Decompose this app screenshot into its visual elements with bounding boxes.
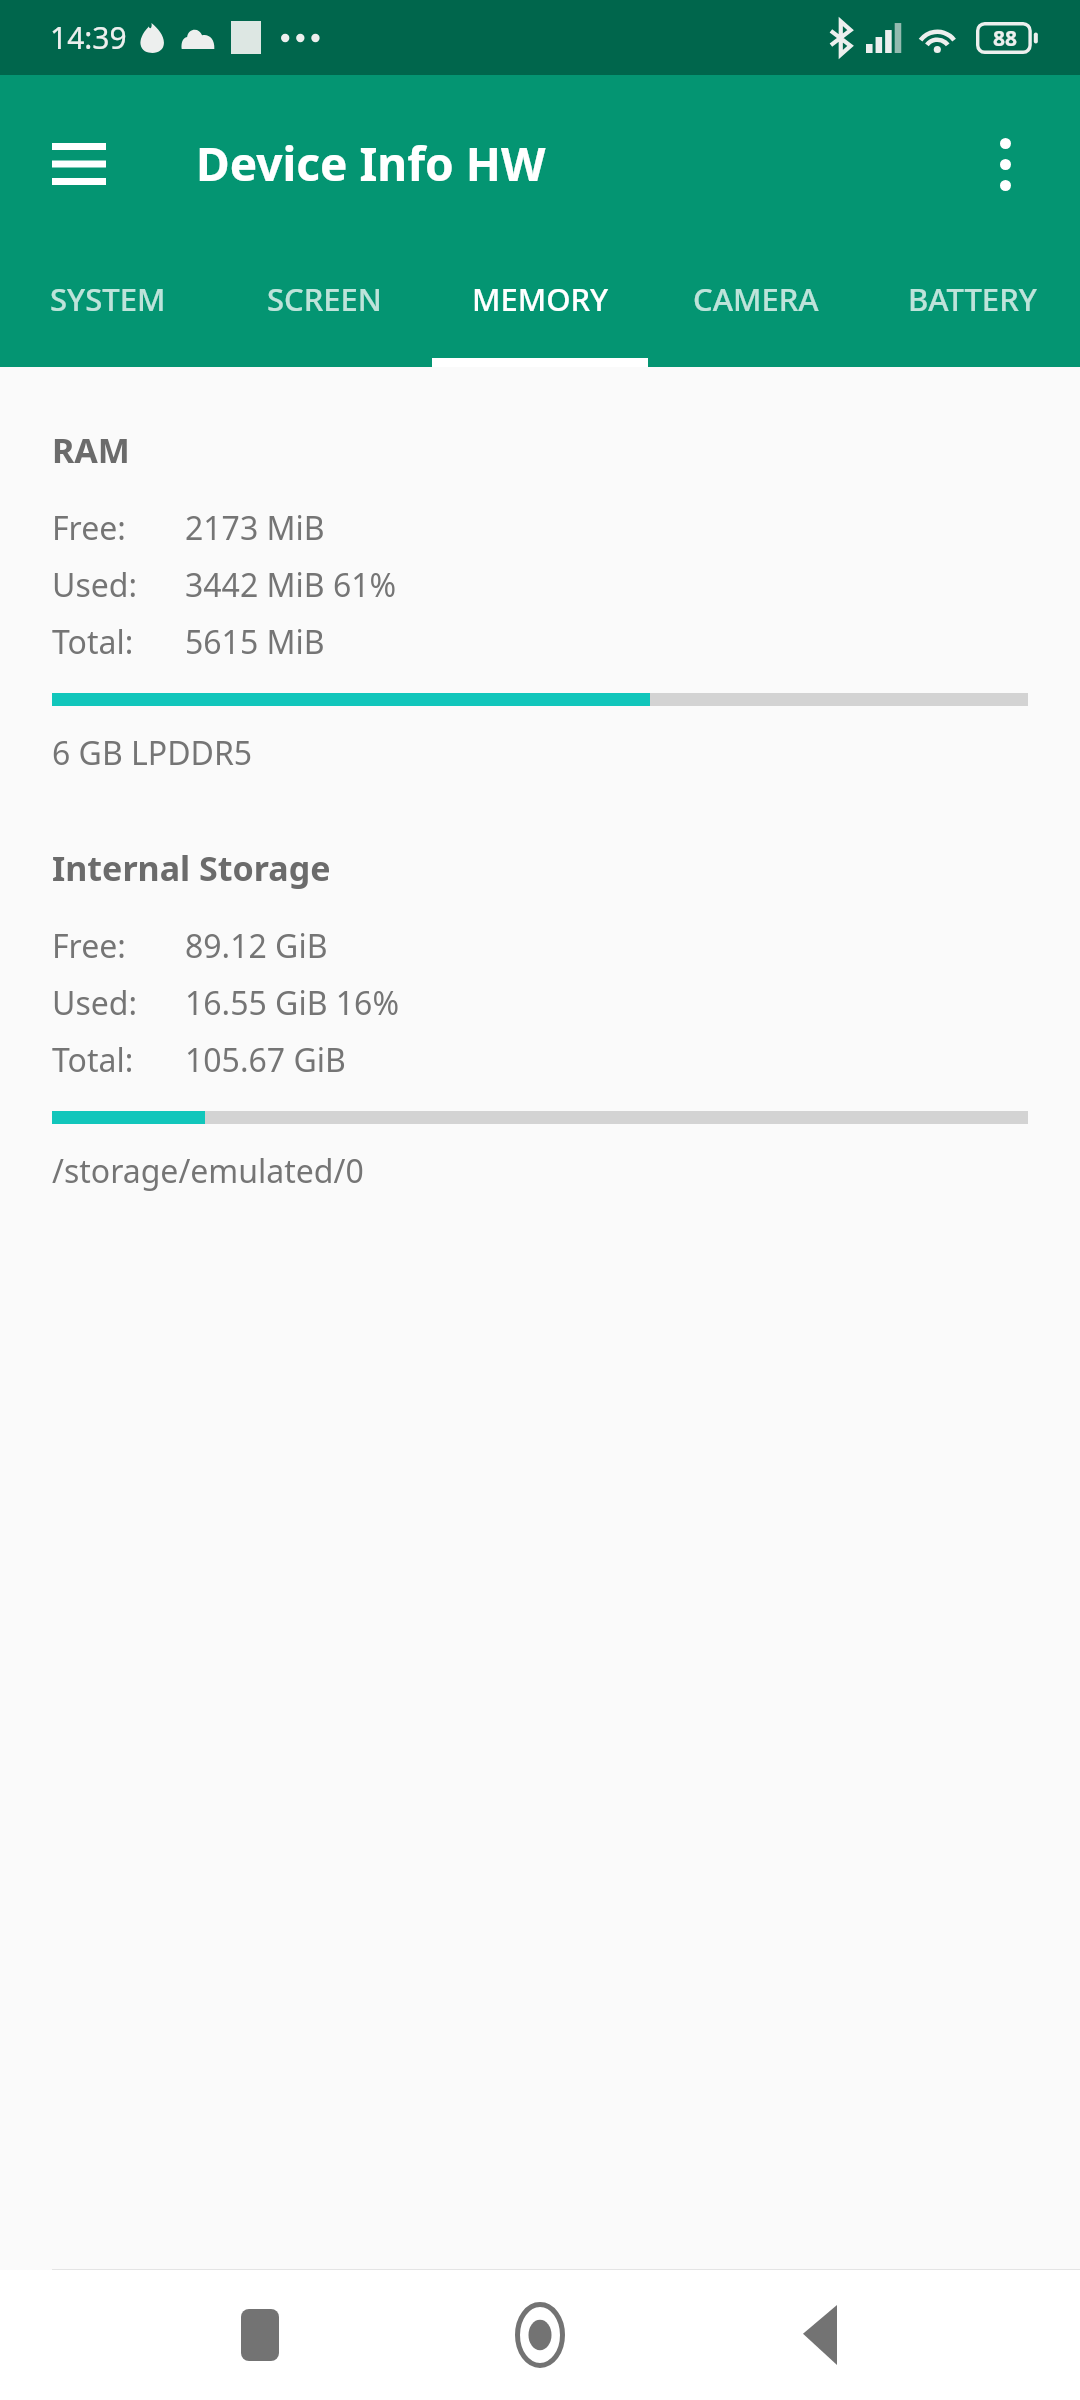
button[interactable]: Recent apps — [200, 2275, 320, 2395]
staticText: BATTERY — [908, 278, 1037, 320]
button[interactable]: SYSTEM — [0, 252, 216, 367]
staticText: Total: — [52, 1038, 134, 1082]
button[interactable]: CAMERA — [648, 252, 864, 367]
button[interactable]: Open navigation drawer — [22, 107, 136, 221]
button[interactable]: Back — [760, 2275, 880, 2395]
staticText: Device Info HW — [196, 132, 546, 195]
staticText: SYSTEM — [50, 278, 166, 320]
staticText: Free: — [52, 506, 126, 550]
staticText: 5615 MiB — [185, 620, 325, 664]
staticText: 105.67 GiB — [185, 1038, 346, 1082]
staticText: 89.12 GiB — [185, 924, 328, 968]
staticText: 14:39 — [50, 17, 127, 58]
staticText: 6 GB LPDDR5 — [52, 731, 253, 775]
staticText: Total: — [52, 620, 134, 664]
button[interactable]: MEMORY — [432, 252, 648, 367]
staticText: Internal Storage — [52, 845, 331, 891]
staticText: RAM — [52, 427, 130, 473]
staticText: MEMORY — [472, 278, 609, 320]
staticText: Free: — [52, 924, 126, 968]
button[interactable]: More options — [950, 109, 1060, 219]
staticText: CAMERA — [693, 278, 819, 320]
button[interactable]: BATTERY — [864, 252, 1080, 367]
staticText: 2173 MiB — [185, 506, 325, 550]
staticText: 88 — [993, 24, 1018, 53]
staticText: Used: — [52, 981, 138, 1025]
staticText: Used: — [52, 563, 138, 607]
staticText: 16.55 GiB 16% — [185, 981, 399, 1025]
button[interactable]: SCREEN — [216, 252, 432, 367]
staticText: /storage/emulated/0 — [52, 1149, 364, 1193]
staticText: 3442 MiB 61% — [185, 563, 397, 607]
staticText: SCREEN — [267, 278, 382, 320]
button[interactable]: Home — [480, 2275, 600, 2395]
